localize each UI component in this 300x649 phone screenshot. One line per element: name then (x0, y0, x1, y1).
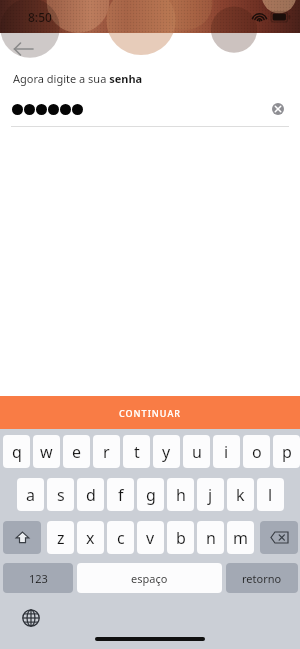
staticText: e (72, 441, 82, 463)
button[interactable]: k (227, 478, 254, 511)
staticText: x (86, 527, 95, 549)
staticText: 8:50 (28, 9, 52, 25)
staticText: Agora digite a sua senha (13, 71, 143, 86)
button[interactable]: z (47, 521, 74, 554)
button[interactable]: CONTINUAR (0, 396, 300, 429)
button[interactable]: a (17, 478, 44, 511)
button[interactable]: r (93, 435, 120, 468)
button[interactable]: l (257, 478, 284, 511)
button[interactable]: f (107, 478, 134, 511)
button[interactable]: u (183, 435, 210, 468)
button[interactable]: j (197, 478, 224, 511)
staticText: h (176, 484, 186, 506)
button[interactable]: n (197, 521, 224, 554)
button[interactable]: t (123, 435, 150, 468)
button[interactable]: Shift (3, 521, 41, 554)
button[interactable]: Change keyboard language (18, 605, 44, 631)
staticText: g (146, 484, 156, 506)
staticText: o (252, 441, 262, 463)
button[interactable]: o (243, 435, 270, 468)
button[interactable]: v (137, 521, 164, 554)
staticText: n (206, 527, 216, 549)
button[interactable]: c (107, 521, 134, 554)
staticText: b (176, 527, 186, 549)
staticText: u (192, 441, 202, 463)
button[interactable]: s (47, 478, 74, 511)
button[interactable]: x (77, 521, 104, 554)
staticText: w (40, 441, 53, 463)
staticText: p (282, 441, 292, 463)
button[interactable]: e (63, 435, 90, 468)
staticText: c (117, 527, 125, 549)
staticText: v (146, 527, 155, 549)
staticText: i (224, 441, 229, 463)
button[interactable]: p (273, 435, 300, 468)
staticText: z (57, 527, 65, 549)
button[interactable]: i (213, 435, 240, 468)
staticText: y (162, 441, 171, 463)
staticText: q (12, 441, 22, 463)
button[interactable]: Clear text (267, 98, 289, 120)
button[interactable]: g (137, 478, 164, 511)
staticText: 123 (29, 571, 48, 586)
button[interactable]: Backspace (260, 521, 298, 554)
staticText: l (268, 484, 273, 506)
staticText: t (134, 441, 140, 463)
staticText: espaço (131, 571, 168, 586)
button[interactable]: espaço (77, 563, 222, 593)
staticText: CONTINUAR (119, 407, 181, 419)
staticText: retorno (242, 571, 282, 586)
button[interactable]: h (167, 478, 194, 511)
staticText: k (236, 484, 245, 506)
staticText: m (233, 527, 248, 549)
button[interactable]: 123 (3, 563, 73, 593)
staticText: a (26, 484, 35, 506)
staticText: d (86, 484, 96, 506)
button[interactable]: q (3, 435, 30, 468)
button[interactable]: retorno (226, 563, 298, 593)
staticText: r (103, 441, 110, 463)
staticText: s (57, 484, 65, 506)
staticText: j (208, 484, 213, 506)
button[interactable]: Back (6, 33, 40, 65)
button[interactable]: w (33, 435, 60, 468)
button[interactable]: d (77, 478, 104, 511)
button[interactable]: y (153, 435, 180, 468)
button[interactable]: m (227, 521, 254, 554)
staticText: f (118, 484, 124, 506)
button[interactable]: b (167, 521, 194, 554)
